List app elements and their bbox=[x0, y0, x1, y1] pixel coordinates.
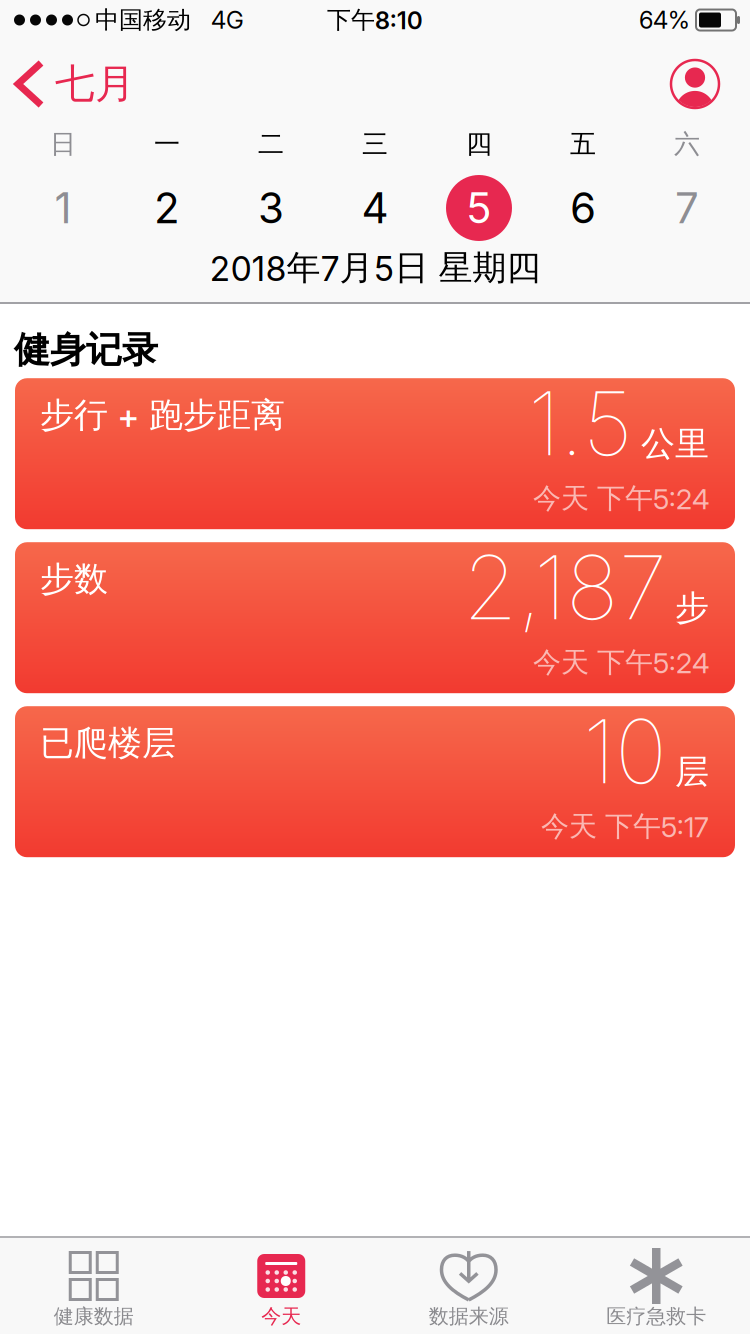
button[interactable]: 3 bbox=[219, 170, 323, 246]
staticText: 健身记录 bbox=[14, 328, 158, 372]
staticText: 三 bbox=[362, 128, 388, 160]
staticText: 今天 bbox=[261, 1304, 301, 1329]
staticText: 七月 bbox=[55, 59, 135, 108]
button[interactable] bbox=[671, 60, 750, 108]
button[interactable]: 七月 bbox=[0, 59, 135, 108]
staticText: 5 bbox=[466, 183, 492, 233]
staticText: 数据来源 bbox=[429, 1304, 509, 1329]
button[interactable]: 1 bbox=[11, 170, 115, 246]
staticText: 一 bbox=[154, 128, 180, 160]
staticText: 10 bbox=[583, 699, 667, 803]
button[interactable]: 数据来源 bbox=[375, 1238, 562, 1334]
staticText: 4 bbox=[361, 183, 388, 233]
staticText: 1 bbox=[54, 183, 71, 233]
button[interactable]: 步行 + 跑步距离 bbox=[15, 378, 735, 529]
staticText: 64% bbox=[639, 6, 690, 34]
staticText: 2,187 bbox=[463, 535, 667, 639]
staticText: 2018年7月5日 星期四 bbox=[209, 247, 540, 289]
button[interactable]: 6 bbox=[531, 170, 635, 246]
staticText: 公里 bbox=[641, 423, 709, 465]
staticText: 4G bbox=[211, 6, 244, 34]
button[interactable]: 医疗急救卡 bbox=[562, 1238, 750, 1334]
staticText: 今天 下午5:24 bbox=[533, 645, 709, 680]
staticText: 步数 bbox=[40, 558, 108, 600]
staticText: 健康数据 bbox=[54, 1304, 134, 1329]
staticText: 已爬楼层 bbox=[40, 722, 176, 764]
staticText: 3 bbox=[258, 183, 284, 233]
staticText: 六 bbox=[674, 128, 700, 160]
staticText: 五 bbox=[570, 128, 596, 160]
staticText: 医疗急救卡 bbox=[606, 1304, 706, 1329]
staticText: 二 bbox=[258, 128, 284, 160]
button[interactable]: 今天 bbox=[187, 1238, 375, 1334]
button[interactable]: 健康数据 bbox=[0, 1238, 187, 1334]
staticText: 四 bbox=[466, 128, 492, 160]
staticText: 下午8:10 bbox=[327, 5, 423, 35]
button[interactable]: 4 bbox=[323, 170, 427, 246]
button[interactable]: 7 bbox=[635, 170, 739, 246]
staticText: 1.5 bbox=[528, 371, 633, 475]
staticText: 步 bbox=[675, 587, 709, 629]
staticText: 步行 + 跑步距离 bbox=[40, 394, 285, 436]
staticText: 7 bbox=[675, 183, 699, 233]
staticText: 今天 下午5:24 bbox=[533, 481, 709, 516]
staticText: 今天 下午5:17 bbox=[541, 809, 709, 844]
button[interactable]: 步数 bbox=[15, 542, 735, 693]
button[interactable]: 5 bbox=[427, 170, 531, 246]
staticText: 2 bbox=[154, 183, 180, 233]
button[interactable]: 2 bbox=[115, 170, 219, 246]
staticText: 层 bbox=[675, 751, 709, 793]
staticText: 中国移动 bbox=[95, 5, 191, 35]
staticText: 日 bbox=[50, 128, 76, 160]
staticText: 6 bbox=[570, 183, 596, 233]
button[interactable]: 已爬楼层 bbox=[15, 706, 735, 857]
